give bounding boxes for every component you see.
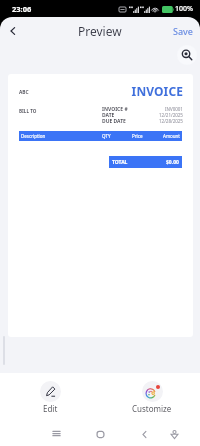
button[interactable]: Recent apps [44,421,68,445]
staticText: $0.00 [166,159,179,166]
staticText: TOTAL [112,159,128,166]
staticText: Save [173,25,194,37]
staticText: Preview [78,23,122,39]
button[interactable]: Back [3,21,23,41]
staticText: Price [132,133,143,139]
button[interactable]: Zoom [177,45,197,65]
staticText: Amount [163,133,180,139]
staticText: QTY [102,133,111,139]
button[interactable]: Back [132,422,156,446]
staticText: Edit [43,403,58,414]
staticText: INV0001 [165,106,183,112]
staticText: BILL TO [19,108,37,114]
staticText: 100% [175,4,193,14]
staticText: DUE DATE [102,118,126,124]
staticText: Description [21,133,46,139]
staticText: INVOICE [82,83,183,99]
button[interactable]: Customize [120,379,184,416]
button[interactable]: Edit [28,379,73,416]
staticText: 12/21/2025 [159,112,183,118]
button[interactable]: Home [88,422,112,446]
staticText: 12/28/2025 [159,118,183,124]
staticText: DATE [102,112,115,118]
staticText: 23:06 [12,4,32,14]
button[interactable]: Save [165,21,200,41]
staticText: ABC [19,89,29,96]
staticText: INVOICE # [102,106,128,112]
button[interactable]: Screenshot [162,422,186,446]
staticText: Customize [132,403,172,414]
